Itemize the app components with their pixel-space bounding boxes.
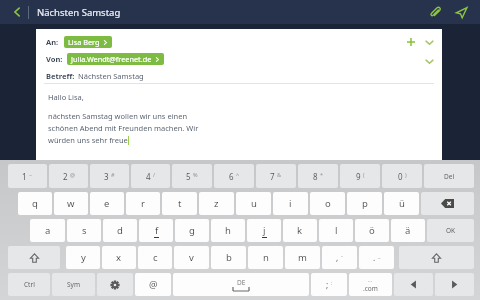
button[interactable]: q: [18, 192, 52, 215]
button[interactable]: 7: [256, 164, 296, 188]
button[interactable]: v: [174, 246, 209, 269]
staticText: (: [363, 171, 365, 178]
staticText: y: [81, 251, 86, 264]
button[interactable]: Expand sender: [422, 54, 436, 68]
button[interactable]: Sym: [52, 273, 95, 296]
staticText: @: [70, 171, 75, 178]
button[interactable]: y: [66, 246, 100, 269]
staticText: i: [289, 197, 292, 210]
staticText: 3: [104, 171, 109, 182]
button[interactable]: f: [139, 219, 173, 242]
button[interactable]: ä: [391, 219, 425, 242]
button[interactable]: Ctrl: [8, 273, 50, 296]
button[interactable]: ö: [355, 219, 389, 242]
staticText: m: [298, 251, 307, 264]
button[interactable]: 9: [340, 164, 380, 188]
button[interactable]: 6: [214, 164, 254, 188]
button[interactable]: x: [102, 246, 136, 269]
button[interactable]: 0: [382, 164, 422, 188]
staticText: j: [263, 224, 266, 237]
button[interactable]: n: [248, 246, 283, 269]
button[interactable]: Back: [6, 1, 28, 23]
button[interactable]: d: [103, 219, 137, 242]
staticText: An:: [46, 37, 59, 47]
staticText: ü: [399, 197, 405, 210]
button[interactable]: e: [90, 192, 124, 215]
button[interactable]: .: [359, 246, 394, 269]
button[interactable]: l: [319, 219, 353, 242]
staticText: würden uns sehr freue: [48, 135, 128, 145]
button[interactable]: Backspace: [421, 192, 474, 215]
staticText: k: [297, 224, 303, 237]
button[interactable]: a: [30, 219, 65, 242]
button[interactable]: OK: [427, 219, 474, 242]
button[interactable]: h: [211, 219, 245, 242]
staticText: DE: [237, 278, 246, 287]
button[interactable]: Expand recipients: [422, 35, 436, 49]
button[interactable]: Add recipient: [404, 35, 418, 49]
button[interactable]: z: [199, 192, 234, 215]
staticText: a: [45, 224, 51, 237]
staticText: s: [82, 224, 87, 237]
button[interactable]: Cursor right: [435, 273, 474, 296]
button[interactable]: 8: [298, 164, 338, 188]
staticText: Betreff:: [46, 71, 75, 81]
staticText: 2: [63, 171, 68, 182]
staticText: #: [111, 171, 115, 178]
staticText: c: [153, 251, 158, 264]
button[interactable]: u: [236, 192, 271, 215]
button[interactable]: 3: [90, 164, 129, 188]
staticText: /: [153, 171, 156, 178]
staticText: ;: [326, 279, 329, 291]
button[interactable]: i: [273, 192, 308, 215]
staticText: 1: [22, 171, 27, 182]
staticText: schönen Abend mit Freunden machen. Wir: [48, 123, 199, 133]
button[interactable]: t: [162, 192, 197, 215]
button[interactable]: ,: [322, 246, 357, 269]
staticText: ä: [405, 224, 411, 237]
button[interactable]: k: [283, 219, 317, 242]
button[interactable]: Keyboard settings: [97, 273, 133, 296]
button[interactable]: m: [285, 246, 320, 269]
staticText: .com: [363, 284, 378, 293]
staticText: o: [325, 197, 331, 210]
button[interactable]: ü: [384, 192, 419, 215]
staticText: e: [104, 197, 110, 210]
staticText: z: [214, 197, 219, 210]
button[interactable]: s: [67, 219, 101, 242]
button[interactable]: c: [138, 246, 172, 269]
button[interactable]: Send: [450, 1, 472, 23]
staticText: u: [251, 197, 257, 210]
button[interactable]: 1: [8, 164, 47, 188]
button[interactable]: p: [347, 192, 382, 215]
button[interactable]: w: [54, 192, 88, 215]
button[interactable]: g: [175, 219, 209, 242]
staticText: h: [225, 224, 231, 237]
button[interactable]: Shift: [399, 246, 474, 269]
button[interactable]: r: [126, 192, 160, 215]
button[interactable]: Attach: [424, 1, 446, 23]
button[interactable]: j: [247, 219, 281, 242]
staticText: w: [67, 197, 75, 210]
button[interactable]: Shift: [8, 246, 60, 269]
button[interactable]: o: [310, 192, 345, 215]
button[interactable]: Cursor left: [394, 273, 433, 296]
button[interactable]: 2: [49, 164, 88, 188]
button[interactable]: ;: [311, 273, 347, 296]
staticText: Nächsten Samstag: [37, 6, 121, 19]
button[interactable]: Space: [173, 273, 309, 296]
staticText: Sym: [67, 280, 80, 289]
button[interactable]: b: [211, 246, 246, 269]
button[interactable]: Julia.Wendt@freenet.de: [67, 53, 164, 65]
button[interactable]: 4: [131, 164, 170, 188]
button[interactable]: Del: [424, 164, 474, 188]
staticText: q: [32, 197, 38, 210]
staticText: Julia.Wendt@freenet.de: [71, 54, 152, 64]
button[interactable]: @: [135, 273, 171, 296]
staticText: Del: [444, 172, 455, 181]
button[interactable]: ...: [349, 273, 392, 296]
staticText: Hallo Lisa,: [48, 92, 84, 102]
button[interactable]: 5: [172, 164, 212, 188]
staticText: 7: [270, 171, 275, 182]
button[interactable]: Lisa Berg: [64, 36, 112, 48]
